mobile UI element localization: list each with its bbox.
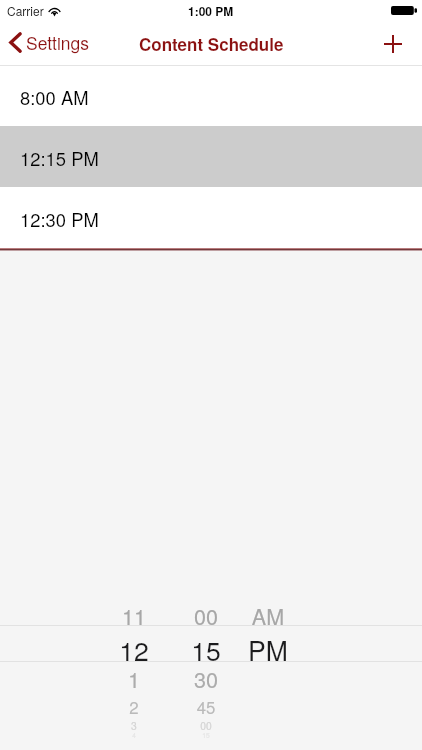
staticText: Content Schedule: [139, 32, 284, 56]
button[interactable]: Add schedule: [364, 20, 422, 65]
staticText: 3: [89, 718, 179, 733]
staticText: 00: [161, 718, 251, 733]
staticText: 12:30 PM: [20, 206, 99, 232]
button[interactable]: 11: [0, 0, 422, 750]
staticText: 1: [89, 663, 179, 694]
staticText: 8:00 AM: [20, 84, 89, 110]
staticText: 00: [161, 600, 251, 631]
staticText: 2: [89, 695, 179, 719]
staticText: 11: [89, 600, 179, 631]
staticText: Carrier: [7, 2, 44, 19]
staticText: 30: [161, 663, 251, 694]
staticText: Settings: [26, 30, 90, 55]
staticText: AM: [223, 600, 313, 631]
staticText: 12:15 PM: [20, 145, 99, 171]
staticText: 45: [161, 695, 251, 719]
staticText: PM: [223, 630, 313, 668]
button[interactable]: 12:15 PM: [0, 126, 422, 187]
staticText: 1:00 PM: [188, 2, 234, 19]
button[interactable]: 8:00 AM: [0, 65, 422, 126]
staticText: 12: [89, 630, 179, 668]
button[interactable]: Settings: [0, 24, 100, 61]
button[interactable]: 12:30 PM: [0, 187, 422, 248]
staticText: 15: [161, 630, 251, 668]
